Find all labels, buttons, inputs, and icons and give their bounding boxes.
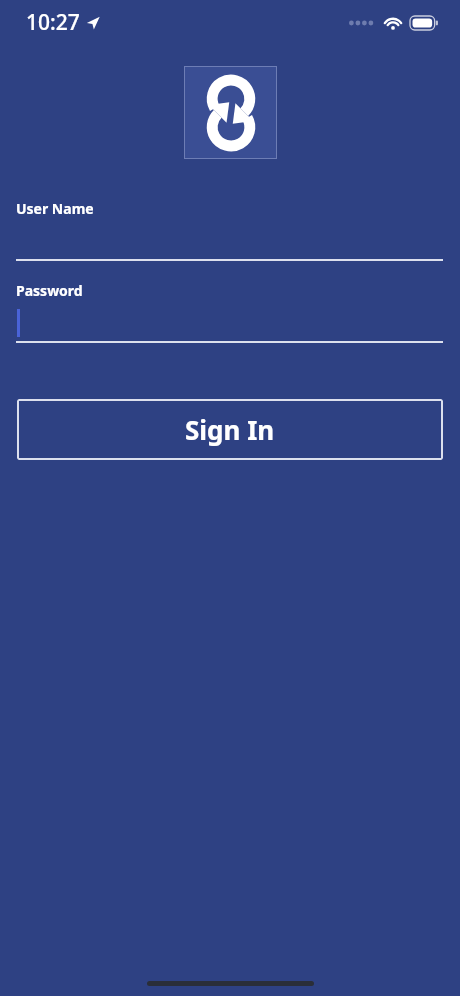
button[interactable] <box>0 249 460 261</box>
staticText: Sign In <box>185 412 275 447</box>
staticText: Password <box>16 281 83 300</box>
staticText: 10:27 <box>26 8 80 37</box>
button[interactable] <box>0 308 460 343</box>
other: App logo <box>198 80 264 146</box>
button[interactable]: Sign In <box>17 399 443 460</box>
staticText: User Name <box>16 199 94 218</box>
